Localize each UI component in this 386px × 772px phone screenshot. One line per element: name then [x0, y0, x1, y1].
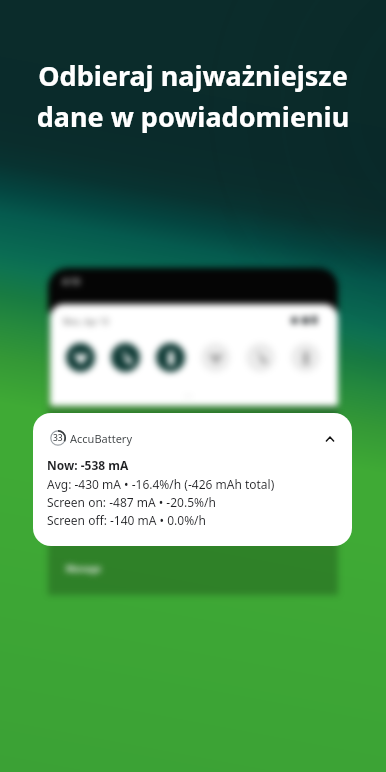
staticText: Now: -538 mA	[47, 457, 129, 473]
button[interactable]: Collapse notification	[315, 423, 345, 453]
button[interactable]: Quick setting	[111, 343, 140, 372]
button[interactable]: Quick setting	[246, 343, 275, 372]
staticText: 33	[53, 432, 63, 444]
staticText: AccuBattery	[70, 431, 133, 446]
button[interactable]: Quick setting	[66, 343, 95, 372]
staticText: Odbieraj najważniejsze dane w powiadomie…	[20, 57, 366, 135]
button[interactable]: Quick setting	[156, 343, 185, 372]
staticText: Manage	[66, 562, 101, 574]
staticText: 4:10	[62, 275, 80, 287]
staticText: Screen off: -140 mA • 0.0%/h	[47, 512, 207, 528]
button[interactable]: Quick setting	[201, 343, 230, 372]
staticText: Mon, Apr 10	[63, 316, 109, 327]
staticText: Screen on: -487 mA • -20.5%/h	[47, 494, 216, 510]
button[interactable]: 33	[33, 413, 352, 546]
button[interactable]: Quick setting	[291, 343, 320, 372]
staticText: Avg: -430 mA • -16.4%/h (-426 mAh total)	[47, 476, 275, 492]
